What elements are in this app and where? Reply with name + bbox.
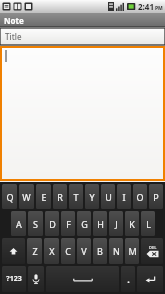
staticText: J: [115, 218, 118, 230]
button[interactable]: I: [117, 184, 131, 209]
button[interactable]: Q: [2, 184, 17, 209]
button[interactable]: A: [11, 211, 26, 236]
staticText: R: [57, 191, 63, 203]
button[interactable]: C: [61, 238, 75, 264]
button[interactable]: G: [77, 211, 91, 236]
staticText: PM: [155, 5, 163, 12]
staticText: S: [33, 218, 38, 230]
staticText: I: [122, 191, 126, 203]
button[interactable]: T: [69, 184, 83, 209]
button[interactable]: [0, 46, 165, 181]
staticText: Note: [4, 15, 24, 26]
staticText: Z: [32, 245, 38, 257]
button[interactable]: F: [61, 211, 75, 236]
staticText: ?123: [6, 274, 22, 284]
staticText: 2:41: [138, 1, 154, 12]
staticText: M: [128, 245, 137, 257]
button[interactable]: Period: [121, 266, 135, 292]
button[interactable]: Y: [85, 184, 99, 209]
button[interactable]: D: [45, 211, 59, 236]
staticText: Title: [5, 31, 22, 42]
staticText: W: [22, 191, 31, 203]
staticText: U: [105, 191, 112, 203]
button[interactable]: O: [133, 184, 147, 209]
staticText: X: [49, 245, 55, 257]
button[interactable]: Voice input: [28, 266, 44, 292]
button[interactable]: E: [36, 184, 51, 209]
staticText: N: [113, 245, 120, 257]
staticText: DEL: [149, 245, 157, 250]
staticText: Y: [89, 191, 95, 203]
staticText: L: [146, 218, 151, 230]
button[interactable]: S: [28, 211, 43, 236]
button[interactable]: P: [149, 184, 163, 209]
staticText: K: [129, 218, 135, 230]
staticText: H: [97, 218, 104, 230]
button[interactable]: B: [93, 238, 107, 264]
button[interactable]: K: [125, 211, 139, 236]
staticText: A: [16, 218, 22, 230]
staticText: T: [73, 191, 79, 203]
staticText: Q: [6, 191, 14, 203]
button[interactable]: U: [101, 184, 115, 209]
staticText: E: [41, 191, 47, 203]
button[interactable]: L: [141, 211, 155, 236]
button[interactable]: N: [109, 238, 123, 264]
button[interactable]: Title: [0, 28, 165, 45]
staticText: V: [81, 245, 87, 257]
button[interactable]: J: [109, 211, 123, 236]
staticText: P: [153, 191, 159, 203]
button[interactable]: X: [44, 238, 59, 264]
staticText: O: [136, 191, 144, 203]
button[interactable]: Z: [27, 238, 42, 264]
staticText: .: [127, 273, 130, 285]
button[interactable]: H: [93, 211, 107, 236]
button[interactable]: W: [19, 184, 34, 209]
staticText: B: [97, 245, 103, 257]
button[interactable]: R: [53, 184, 67, 209]
button[interactable]: Delete: [141, 238, 163, 264]
button[interactable]: Shift: [2, 238, 25, 264]
button[interactable]: Symbols: [2, 266, 26, 292]
button[interactable]: V: [77, 238, 91, 264]
staticText: C: [65, 245, 71, 257]
staticText: D: [49, 218, 56, 230]
button[interactable]: Enter: [137, 266, 163, 292]
button[interactable]: Space: [46, 266, 119, 292]
button[interactable]: M: [125, 238, 139, 264]
staticText: G: [81, 218, 88, 230]
staticText: F: [66, 218, 71, 230]
